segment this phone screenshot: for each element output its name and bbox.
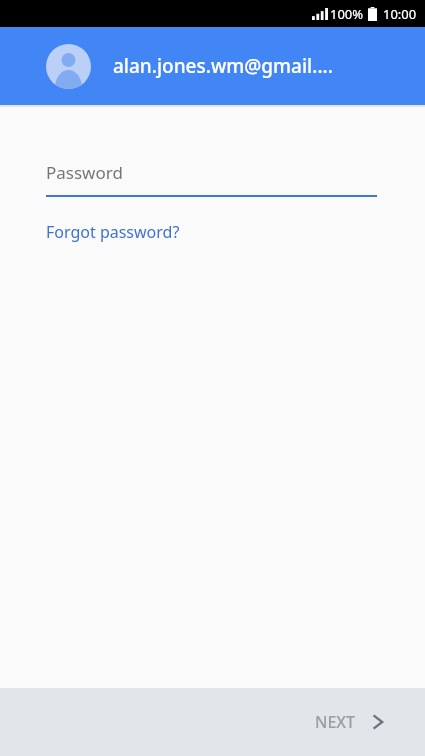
staticText: alan.jones.wm@gmail.... [113, 53, 333, 79]
staticText: Forgot password? [46, 221, 180, 243]
staticText: 10:00 [383, 5, 417, 23]
staticText: 100% [330, 5, 364, 23]
staticText: Password [46, 161, 123, 184]
button[interactable]: Account avatar [0, 27, 425, 105]
button[interactable]: Forgot password? [0, 219, 200, 245]
other: Next [371, 715, 385, 729]
button[interactable]: NEXT [293, 688, 425, 756]
other: Account avatar [46, 44, 91, 89]
staticText: NEXT [315, 711, 356, 733]
button[interactable]: Password [0, 157, 425, 197]
